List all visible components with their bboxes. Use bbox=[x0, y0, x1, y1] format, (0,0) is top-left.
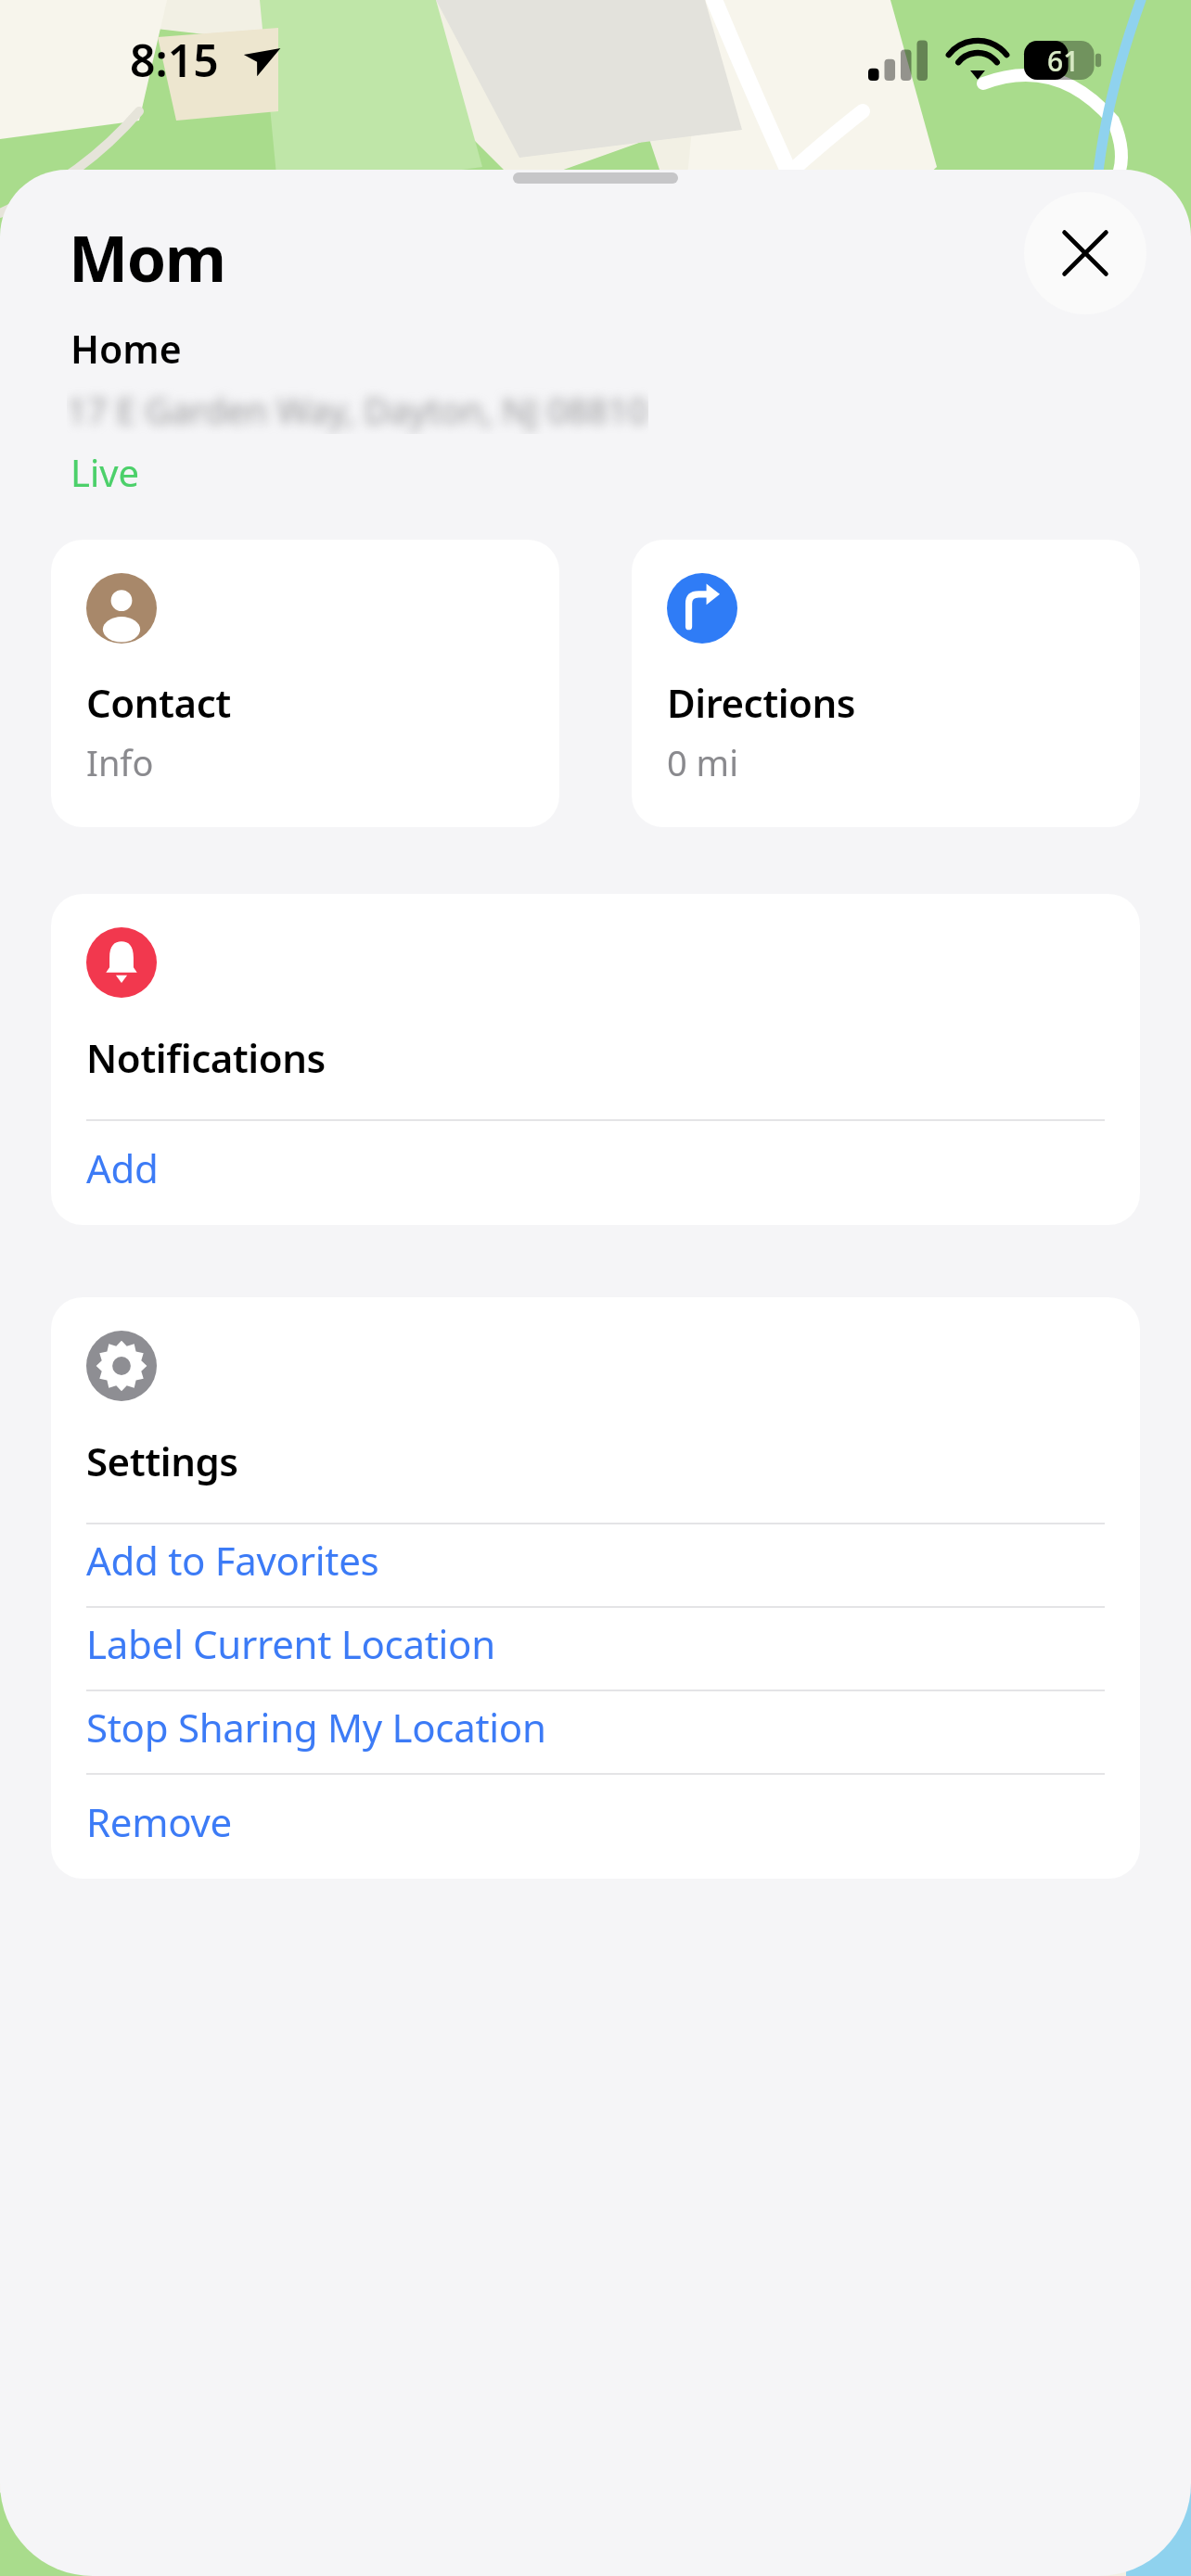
staticText: Settings bbox=[86, 1435, 238, 1487]
staticText: Mom bbox=[69, 214, 225, 300]
button[interactable]: Contact bbox=[51, 540, 559, 827]
staticText: Remove bbox=[86, 1795, 232, 1848]
button[interactable]: Add bbox=[51, 1121, 1140, 1225]
staticText: 8:15 bbox=[130, 30, 219, 90]
staticText: 0 mi bbox=[667, 738, 738, 786]
staticText: Label Current Location bbox=[86, 1617, 495, 1670]
staticText: Home bbox=[70, 323, 182, 375]
staticText: Contact bbox=[86, 676, 231, 729]
staticText: 61 bbox=[1047, 42, 1080, 80]
staticText: 17 E Garden Way, Dayton, NJ 08810 bbox=[67, 386, 648, 434]
staticText: Notifications bbox=[86, 1031, 326, 1084]
button[interactable]: Remove bbox=[51, 1775, 1140, 1879]
button[interactable]: Label Current Location bbox=[51, 1608, 1140, 1690]
button[interactable]: Stop Sharing My Location bbox=[51, 1691, 1140, 1773]
staticText: Add bbox=[86, 1141, 159, 1194]
staticText: Add to Favorites bbox=[86, 1534, 379, 1587]
staticText: Live bbox=[70, 447, 140, 497]
button[interactable]: Directions bbox=[632, 540, 1140, 827]
staticText: Directions bbox=[667, 676, 856, 729]
staticText: Stop Sharing My Location bbox=[86, 1701, 546, 1753]
staticText: Info bbox=[86, 738, 154, 786]
button[interactable]: Close bbox=[1024, 192, 1146, 314]
button[interactable]: Add to Favorites bbox=[51, 1524, 1140, 1606]
